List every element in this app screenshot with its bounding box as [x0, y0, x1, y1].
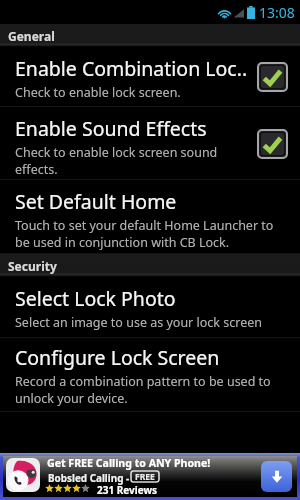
staticText: Select an image to use as your lock scre… [15, 314, 262, 331]
button[interactable]: Enable Combination Loc.. [0, 47, 300, 107]
staticText: Touch to set your default Home Launcher … [15, 217, 274, 234]
staticText: be used in conjunction with CB Lock. [15, 234, 230, 251]
staticText: Select Lock Photo [15, 285, 176, 312]
staticText: Get FREE Calling to ANY Phone! [47, 456, 211, 470]
staticText: Security [8, 258, 57, 274]
staticText: effects. [15, 161, 58, 178]
button[interactable]: Download app [261, 461, 292, 492]
button[interactable]: Get FREE Calling to ANY Phone! [3, 456, 297, 497]
staticText: Bobsled Calling - [48, 471, 132, 484]
staticText: Configure Lock Screen [15, 344, 220, 371]
button[interactable]: Select Lock Photo [0, 277, 300, 338]
staticText: Enable Combination Loc.. [15, 55, 248, 82]
staticText: 231 Reviews [97, 483, 158, 497]
button[interactable]: Toggle setting [258, 130, 287, 158]
staticText: 13:08 [259, 3, 295, 22]
button[interactable]: Toggle setting [258, 63, 287, 91]
staticText: Enable Sound Effects [15, 115, 207, 142]
staticText: Check to enable lock screen sound [15, 144, 218, 161]
staticText: Record a combination pattern to be used … [15, 373, 271, 390]
button[interactable]: Configure Lock Screen [0, 338, 300, 412]
button[interactable]: Set Default Home [0, 180, 300, 254]
staticText: Check to enable lock screen. [15, 84, 181, 101]
button[interactable]: Enable Sound Effects [0, 107, 300, 180]
staticText: Set Default Home [15, 188, 177, 215]
staticText: General [8, 28, 55, 44]
staticText: unlock your device. [15, 390, 128, 407]
staticText: FREE [135, 471, 155, 482]
